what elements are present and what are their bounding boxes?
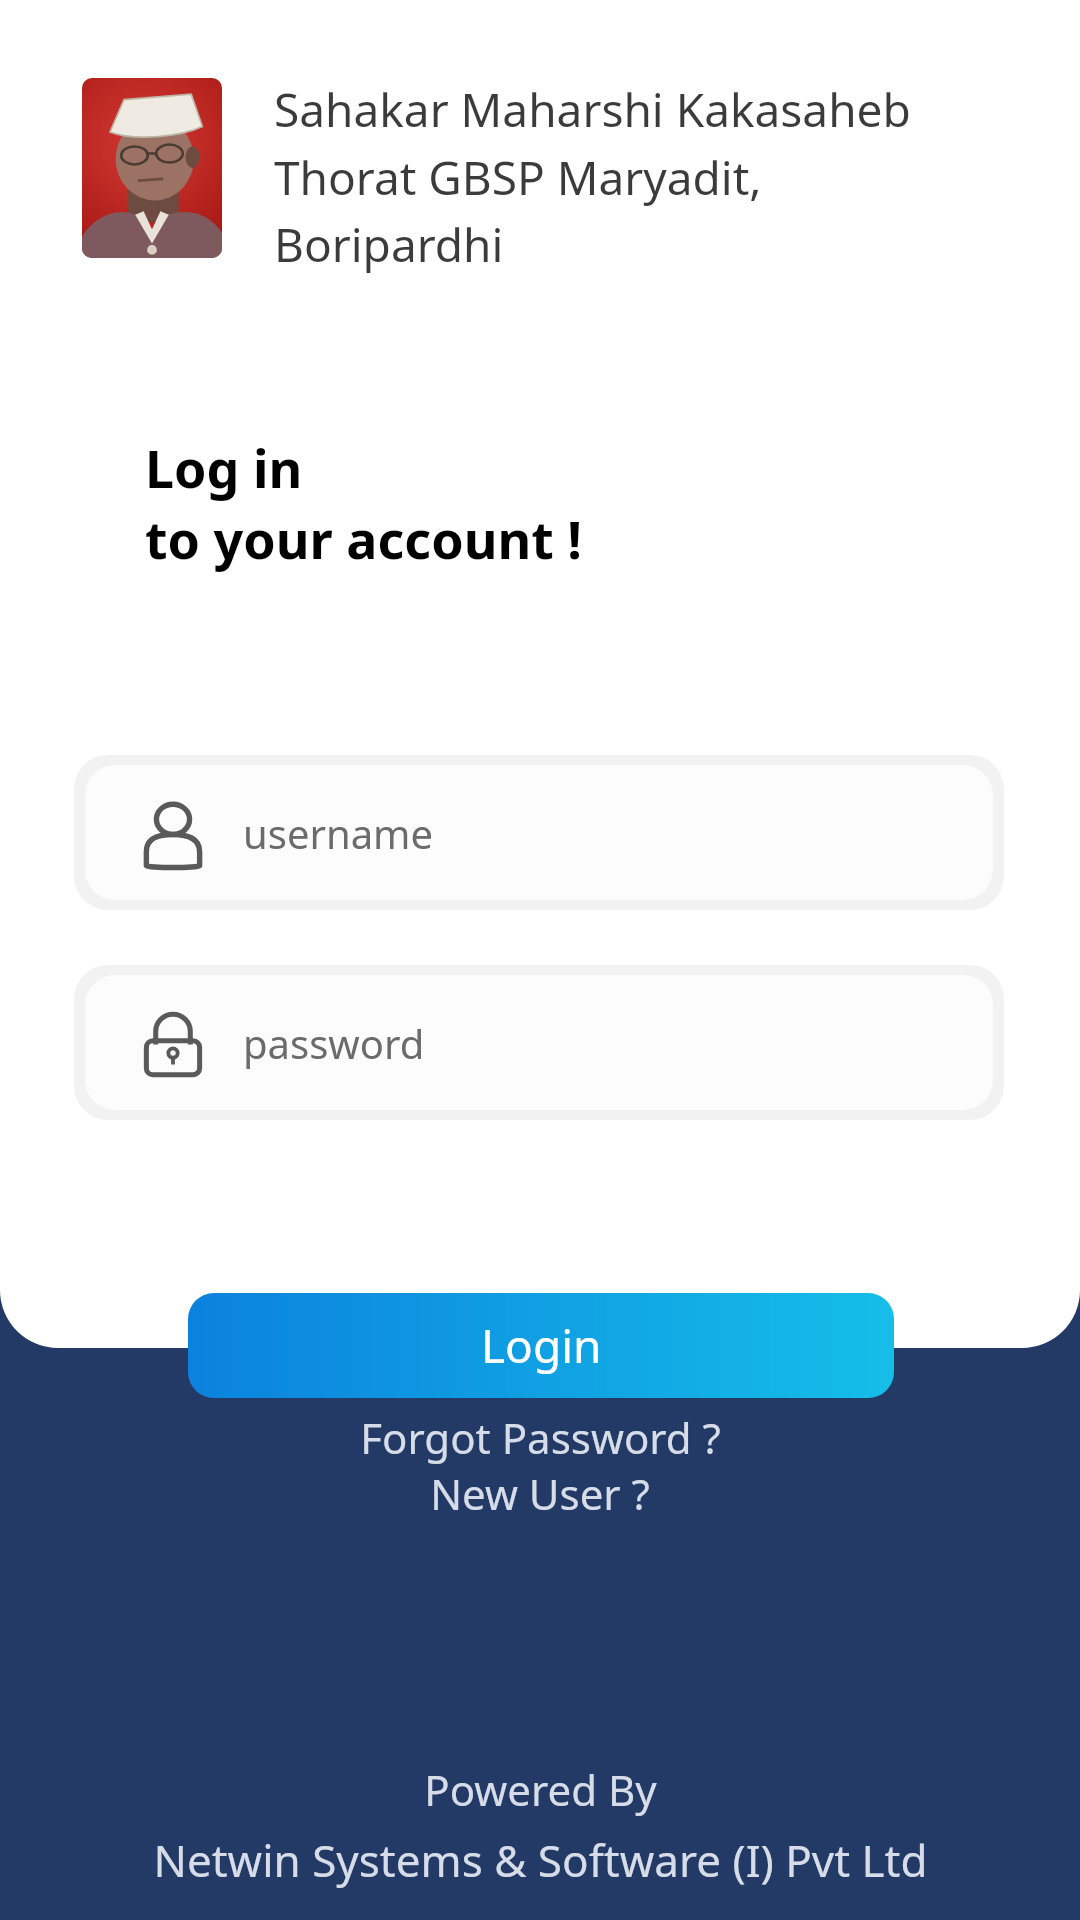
staticText: Netwin Systems & Software (I) Pvt Ltd [153, 1830, 928, 1890]
button[interactable]: Forgot Password ? [0, 1408, 1080, 1466]
staticText: to your account ! [145, 503, 583, 574]
staticText: Sahakar Maharshi Kakasaheb Thorat GBSP M… [274, 78, 1002, 275]
other: Password [137, 1007, 209, 1079]
button[interactable]: Login [188, 1293, 894, 1398]
staticText: password [243, 1016, 425, 1070]
button[interactable]: New User ? [0, 1464, 1080, 1522]
staticText: New User ? [430, 1465, 650, 1522]
staticText: Powered By [424, 1761, 657, 1818]
button[interactable]: Password [85, 975, 993, 1110]
button[interactable]: Username [85, 765, 993, 900]
staticText: Forgot Password ? [360, 1409, 721, 1466]
staticText: username [243, 806, 434, 860]
other: Username [137, 797, 209, 869]
staticText: Login [481, 1314, 602, 1377]
staticText: Log in [145, 432, 303, 503]
